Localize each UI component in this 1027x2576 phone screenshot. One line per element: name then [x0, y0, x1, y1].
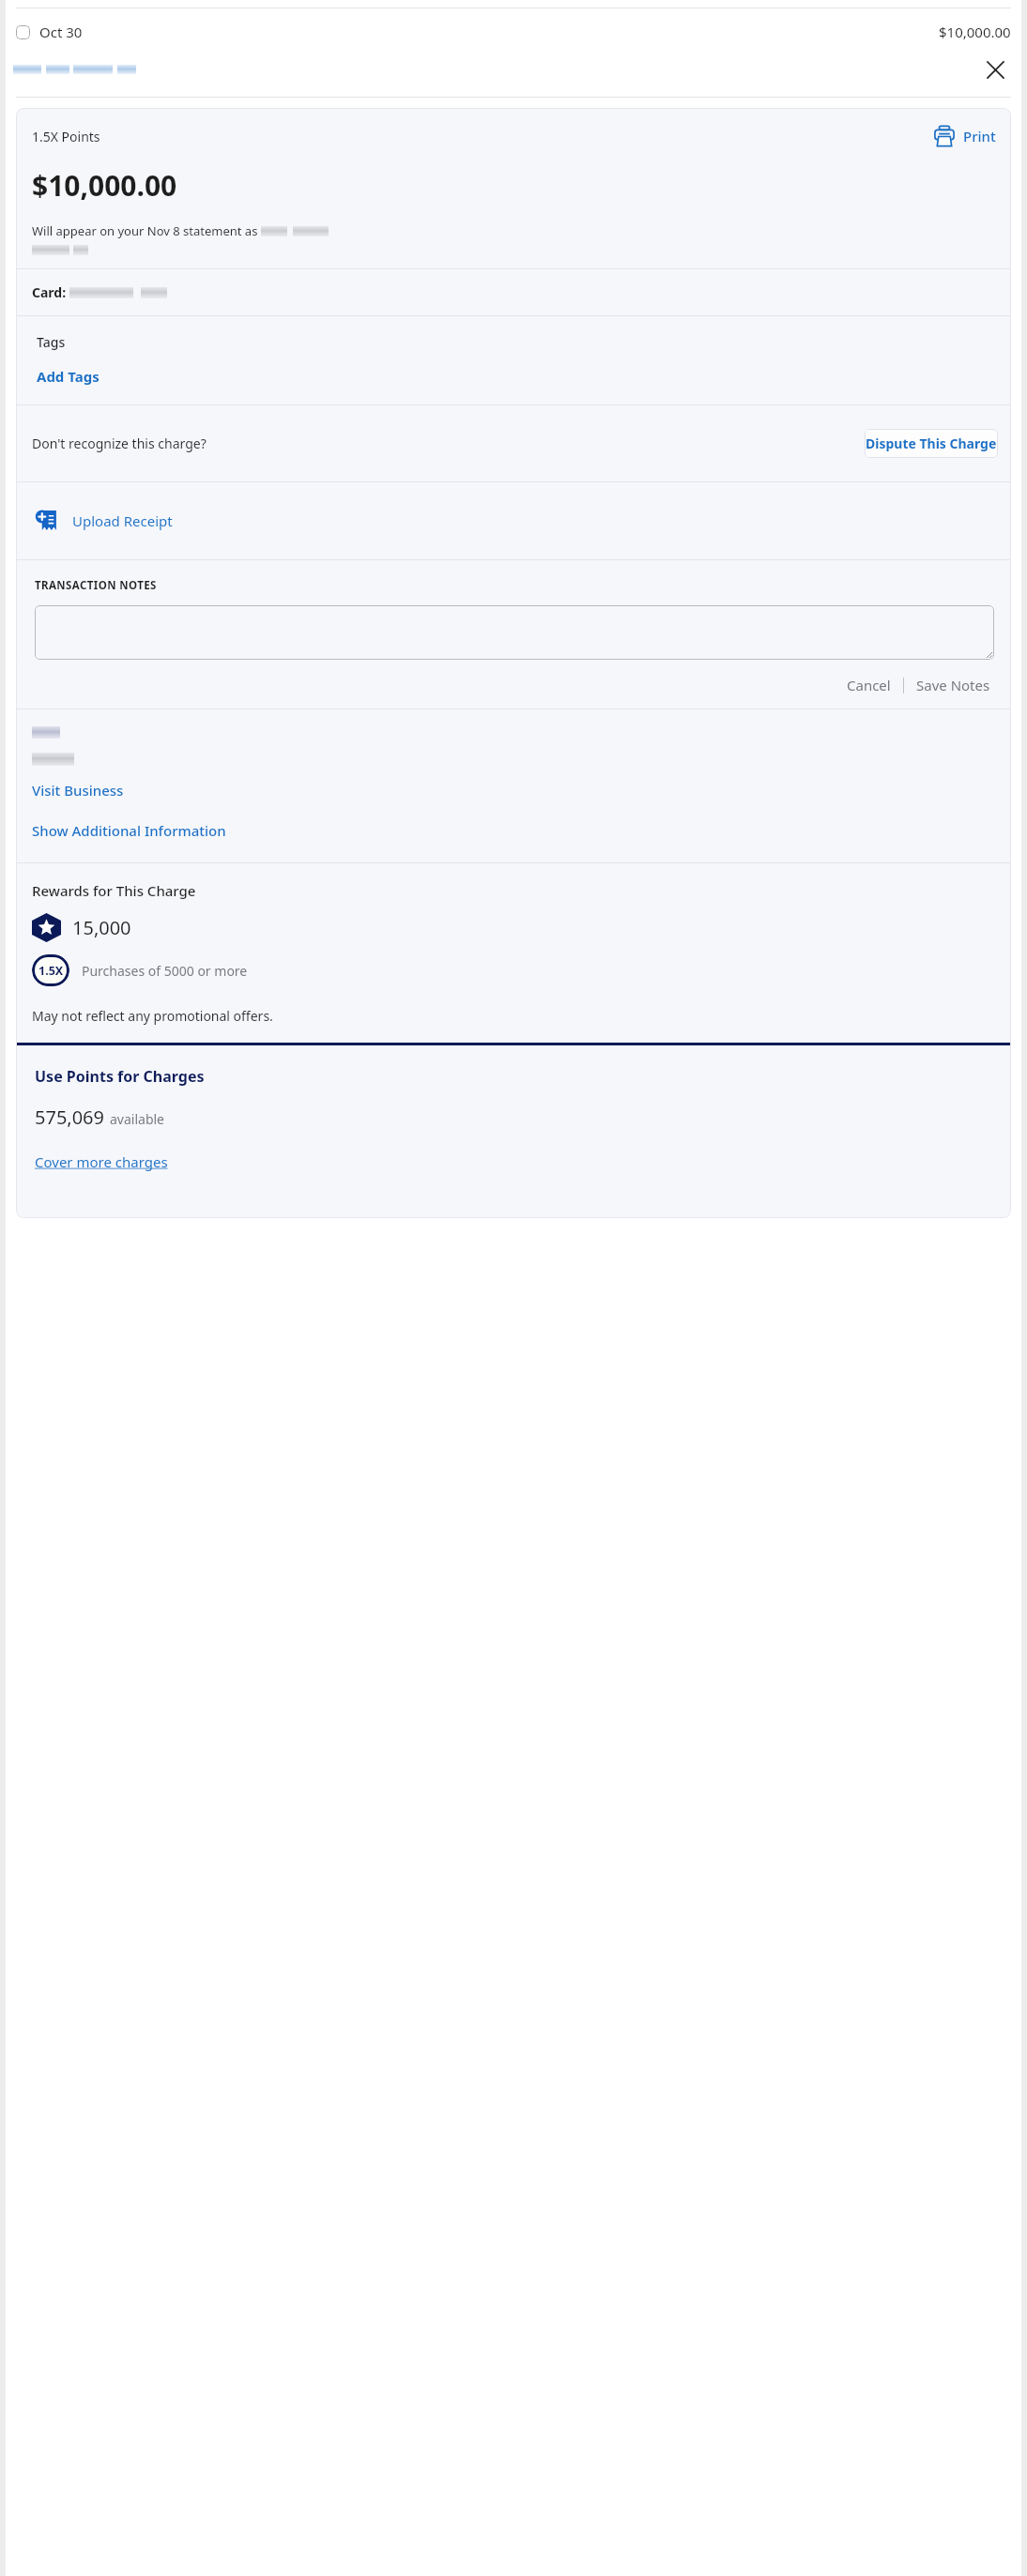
button[interactable]: Cancel	[843, 673, 895, 697]
button[interactable]: Cover more charges	[35, 1152, 168, 1171]
staticText: $10,000.00	[32, 166, 177, 205]
staticText: Card:	[32, 283, 69, 301]
staticText: May not reflect any promotional offers.	[32, 1007, 273, 1025]
staticText: Will appear on your Nov 8 statement as	[32, 222, 261, 239]
staticText: Cancel	[847, 676, 891, 694]
staticText: 1.5X	[38, 963, 64, 979]
staticText: Use Points for Charges	[35, 1066, 205, 1087]
staticText: Upload Receipt	[72, 511, 173, 530]
staticText: Show Additional Information	[32, 821, 226, 840]
staticText: Dispute This Charge	[866, 434, 997, 452]
button[interactable]: Select transaction	[16, 25, 30, 39]
staticText: Tags	[37, 333, 66, 351]
staticText: TRANSACTION NOTES	[35, 578, 157, 593]
staticText: Don't recognize this charge?	[32, 434, 207, 452]
button[interactable]: Dispute This Charge	[865, 429, 998, 458]
staticText: Add Tags	[37, 367, 100, 386]
button[interactable]: Add Tags	[37, 367, 100, 386]
button[interactable]: Save Notes	[912, 673, 994, 697]
staticText: Save Notes	[916, 676, 990, 694]
button[interactable]: Print	[931, 123, 998, 149]
staticText: 1.5X Points	[32, 128, 100, 145]
staticText: $10,000.00	[939, 23, 1011, 41]
staticText: 575,069	[35, 1105, 104, 1130]
button[interactable]: Close	[979, 53, 1011, 85]
staticText: 15,000	[72, 915, 131, 940]
staticText: Oct 30	[39, 23, 83, 41]
button[interactable]: Upload Receipt	[16, 482, 1011, 559]
staticText: Visit Business	[32, 781, 124, 800]
staticText: Rewards for This Charge	[32, 881, 196, 900]
button[interactable]: Show Additional Information	[32, 821, 226, 840]
button[interactable]	[35, 605, 994, 660]
staticText: available	[110, 1110, 165, 1128]
staticText: Cover more charges	[35, 1152, 168, 1171]
staticText: Print	[963, 127, 996, 145]
staticText: Purchases of 5000 or more	[82, 962, 248, 980]
button[interactable]: Visit Business	[32, 781, 124, 800]
